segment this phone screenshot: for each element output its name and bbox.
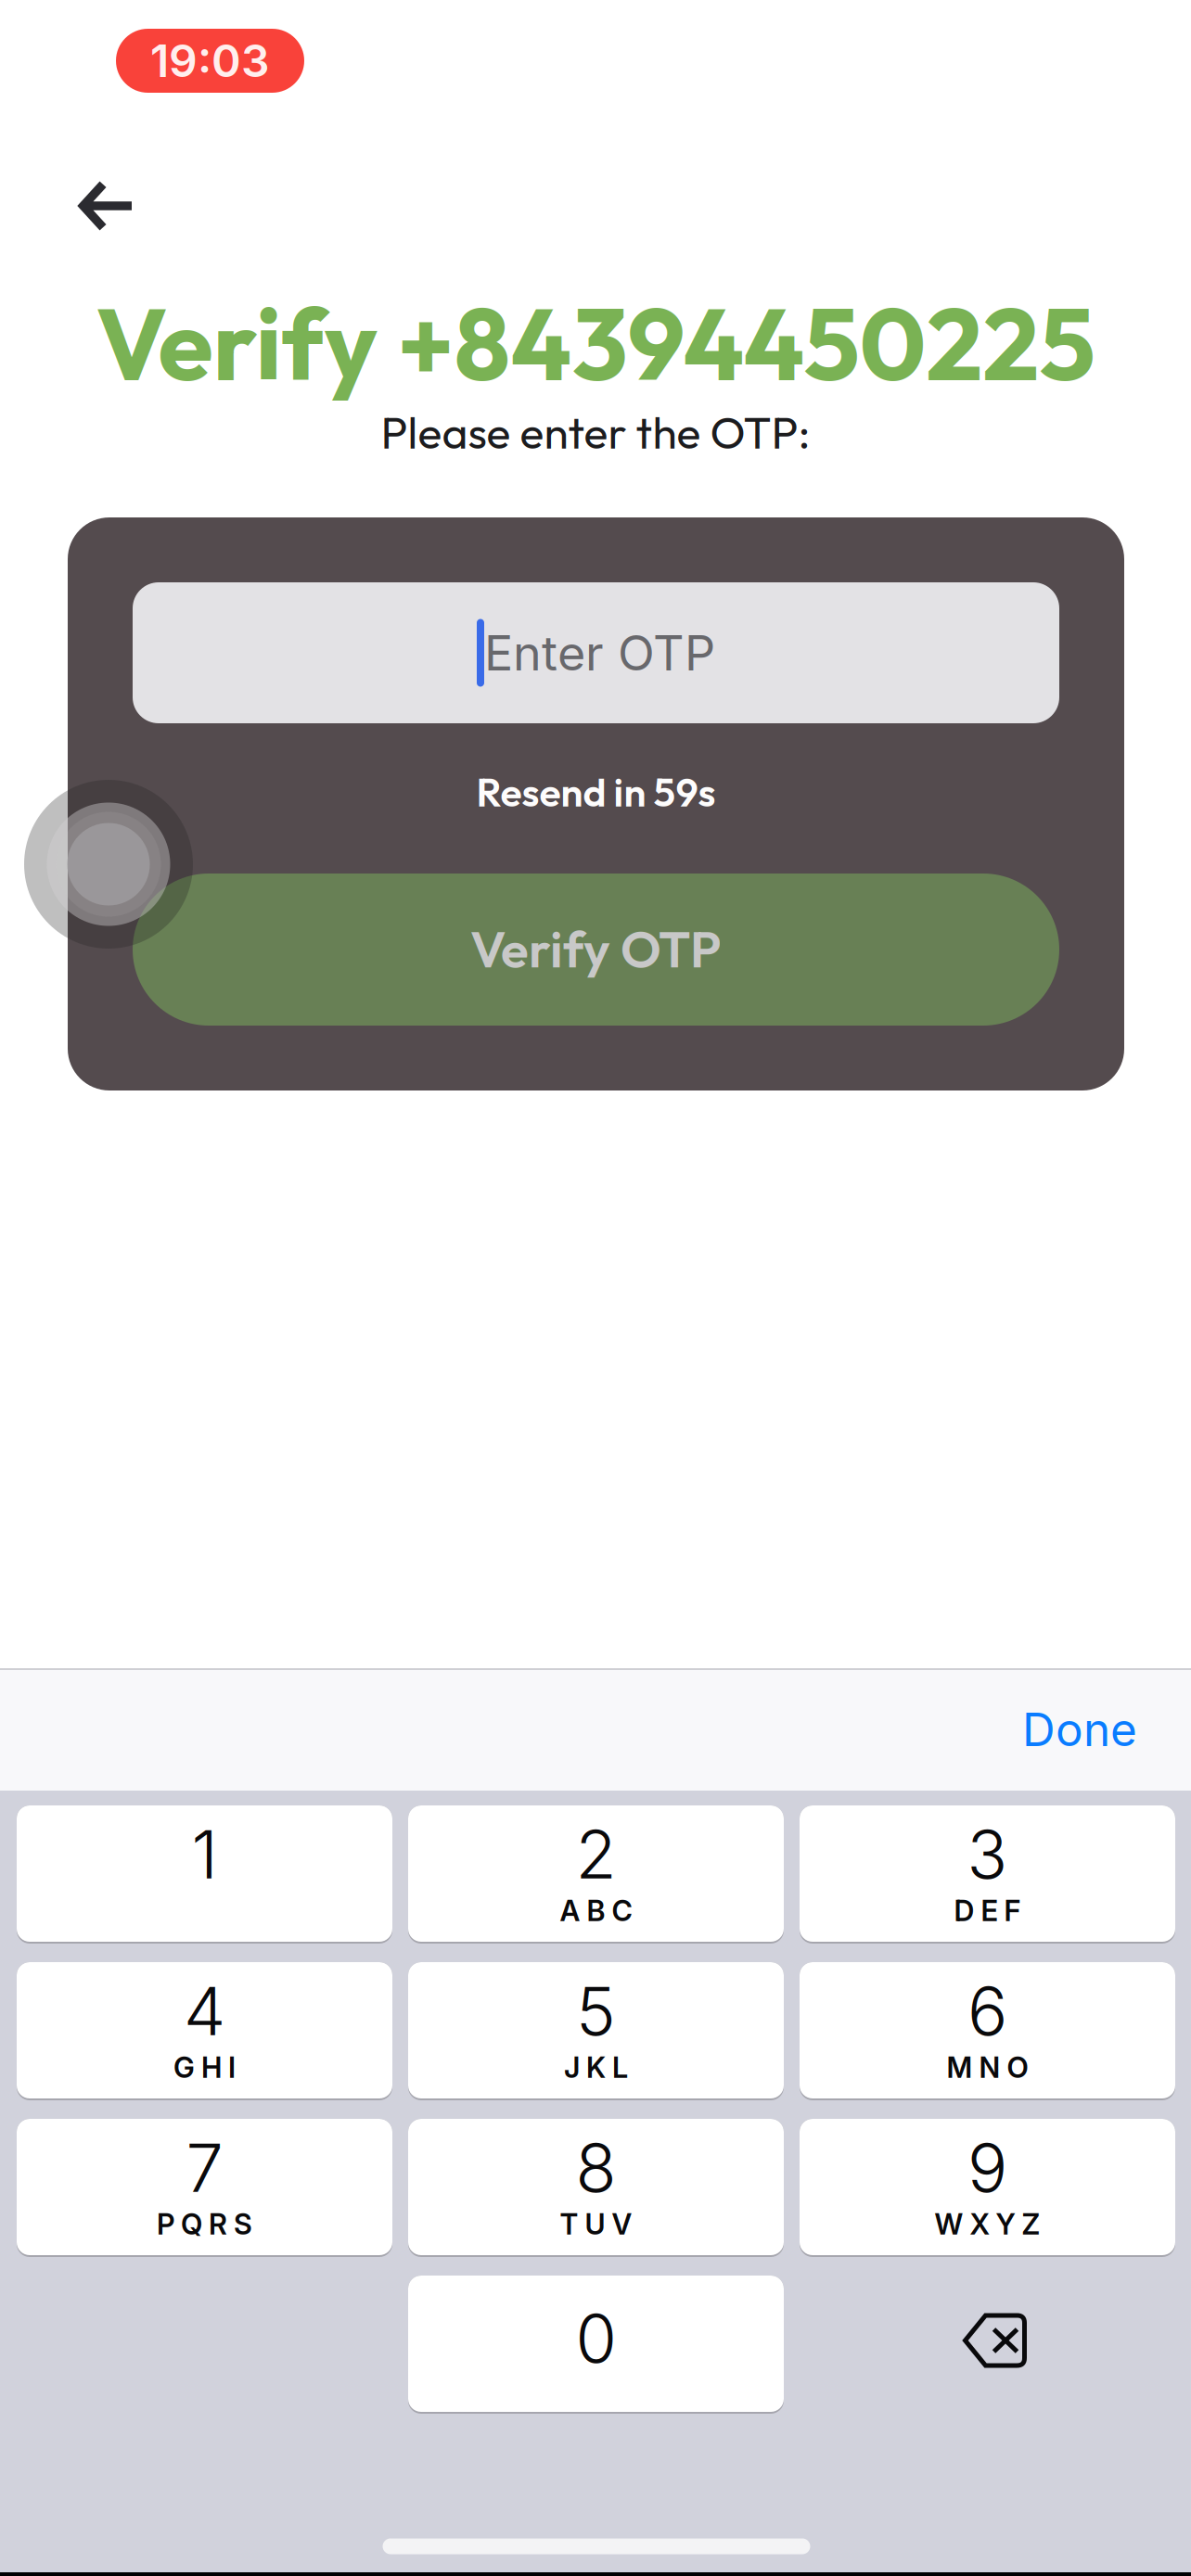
- button[interactable]: 5: [408, 1962, 784, 2100]
- staticText: 5: [576, 1970, 616, 2051]
- button[interactable]: 7: [17, 2119, 392, 2257]
- staticText: W X Y Z: [935, 2207, 1040, 2241]
- staticText: Resend in 59s: [476, 767, 716, 817]
- button[interactable]: 1: [17, 1805, 392, 1944]
- button[interactable]: Done: [994, 1673, 1165, 1788]
- staticText: A B C: [560, 1894, 632, 1928]
- staticText: Verify OTP: [470, 917, 722, 981]
- button[interactable]: 0: [408, 2276, 784, 2414]
- staticText: 7: [186, 2127, 223, 2208]
- button[interactable]: 4: [17, 1962, 392, 2100]
- staticText: T U V: [560, 2207, 632, 2241]
- staticText: 6: [967, 1970, 1007, 2051]
- button[interactable]: Delete: [807, 2271, 1182, 2410]
- staticText: M N O: [947, 2050, 1028, 2085]
- staticText: G H I: [173, 2050, 236, 2085]
- staticText: 19:03: [150, 34, 270, 88]
- staticText: 4: [184, 1970, 225, 2051]
- button[interactable]: Back: [50, 155, 160, 257]
- staticText: 8: [576, 2127, 616, 2208]
- staticText: 2: [576, 1814, 616, 1895]
- staticText: Verify +84394450225: [96, 280, 1095, 406]
- button[interactable]: 2: [408, 1805, 784, 1944]
- staticText: D E F: [954, 1894, 1021, 1928]
- staticText: P Q R S: [157, 2207, 252, 2241]
- button[interactable]: 6: [800, 1962, 1175, 2100]
- staticText: 9: [967, 2127, 1007, 2208]
- staticText: 1: [192, 1814, 218, 1895]
- button[interactable]: 9: [800, 2119, 1175, 2257]
- button[interactable]: 8: [408, 2119, 784, 2257]
- button[interactable]: 3: [800, 1805, 1175, 1944]
- staticText: 0: [576, 2298, 616, 2379]
- staticText: 3: [967, 1814, 1008, 1895]
- staticText: Done: [1022, 1702, 1137, 1757]
- staticText: Enter OTP: [484, 624, 715, 682]
- staticText: J K L: [564, 2050, 628, 2085]
- button[interactable]: Verify OTP: [133, 874, 1059, 1026]
- staticText: Please enter the OTP:: [381, 404, 810, 460]
